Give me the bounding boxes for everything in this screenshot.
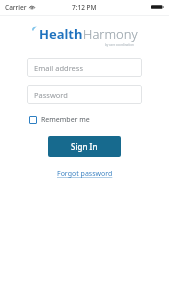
- staticText: 7:12 PM: [72, 3, 97, 12]
- staticText: Forgot password: [57, 169, 113, 179]
- button[interactable]: Forgot password: [53, 167, 117, 181]
- button[interactable]: Remember me: [28, 113, 91, 127]
- button[interactable]: Password: [27, 85, 142, 104]
- button[interactable]: Email address: [27, 58, 142, 77]
- staticText: Sign In: [71, 141, 98, 152]
- button[interactable]: Sign In: [48, 136, 121, 157]
- staticText: Email address: [34, 63, 84, 73]
- staticText: by care coordination: [105, 43, 134, 47]
- staticText: Harmony: [83, 25, 138, 43]
- staticText: Password: [34, 90, 68, 100]
- staticText: Remember me: [41, 115, 90, 125]
- staticText: Health: [39, 25, 83, 43]
- staticText: Carrier: [5, 3, 27, 12]
